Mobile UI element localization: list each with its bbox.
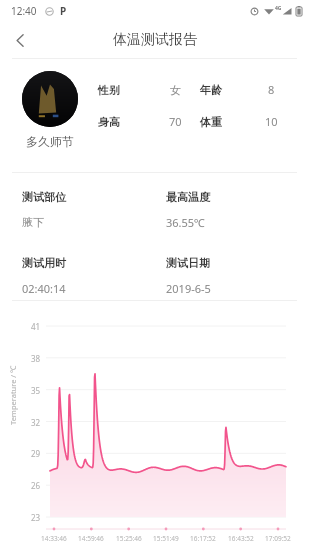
- staticText: 16:43:52: [228, 534, 254, 543]
- staticText: 26: [31, 480, 41, 491]
- staticText: 8: [268, 82, 275, 97]
- staticText: 女: [170, 83, 181, 97]
- staticText: 测试用时: [22, 256, 66, 270]
- staticText: 15:25:46: [116, 534, 142, 543]
- staticText: 32: [31, 417, 41, 428]
- staticText: 02:40:14: [22, 281, 66, 296]
- staticText: 38: [31, 353, 41, 364]
- staticText: 41: [31, 321, 41, 332]
- staticText: 多久师节: [26, 134, 74, 149]
- staticText: 体重: [200, 115, 222, 129]
- staticText: 16:17:52: [190, 534, 216, 543]
- staticText: 14:59:46: [78, 534, 104, 543]
- staticText: 2019-6-5: [166, 281, 211, 296]
- staticText: 性别: [98, 83, 120, 97]
- staticText: 4G: [275, 5, 282, 12]
- button[interactable]: Profile photo: [22, 71, 78, 127]
- button[interactable]: Back: [5, 25, 35, 55]
- staticText: 29: [31, 448, 41, 459]
- staticText: 最高温度: [166, 190, 210, 204]
- staticText: 35: [31, 385, 41, 396]
- staticText: Temperature / ℃: [8, 365, 18, 425]
- staticText: 腋下: [22, 215, 44, 229]
- staticText: 36.55℃: [166, 215, 206, 230]
- staticText: 12:40: [11, 4, 37, 18]
- staticText: P: [60, 4, 67, 18]
- staticText: 70: [169, 114, 182, 129]
- staticText: 15:51:49: [153, 534, 179, 543]
- staticText: 身高: [98, 115, 120, 129]
- staticText: 测试日期: [166, 256, 210, 270]
- staticText: 23: [31, 512, 41, 523]
- staticText: 17:09:52: [265, 534, 291, 543]
- staticText: 14:33:46: [41, 534, 67, 543]
- staticText: 年龄: [200, 83, 222, 97]
- staticText: 体温测试报告: [113, 31, 197, 49]
- staticText: 测试部位: [22, 190, 66, 204]
- staticText: 10: [265, 114, 278, 129]
